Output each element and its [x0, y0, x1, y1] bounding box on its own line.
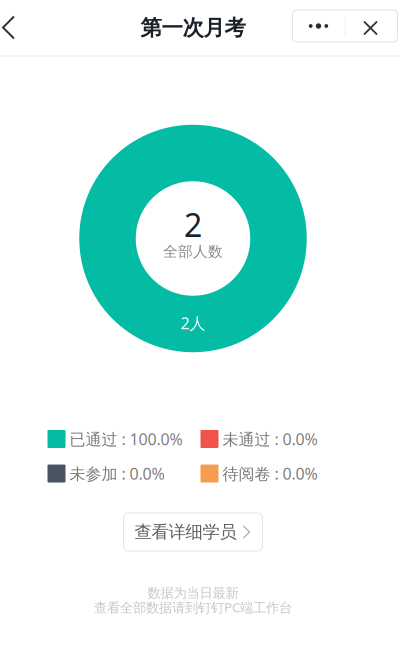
staticText: 查看全部数据请到钉钉PC端工作台 [94, 598, 292, 616]
staticText: 2 [184, 203, 202, 246]
button[interactable]: More [292, 10, 344, 42]
staticText: 待阅卷 : 0.0% [222, 463, 317, 484]
staticText: 未参加 : 0.0% [69, 463, 164, 484]
staticText: 已通过 : 100.0% [69, 428, 182, 450]
staticText: 查看详细学员 [134, 521, 236, 543]
staticText: 全部人数 [163, 242, 223, 260]
staticText: 未通过 : 0.0% [222, 428, 317, 450]
staticText: 2人 [180, 312, 205, 334]
staticText: 数据为当日最新 [147, 585, 238, 601]
staticText: 第一次月考 [140, 15, 245, 41]
button[interactable]: 查看详细学员 [123, 513, 262, 551]
button[interactable]: Close [345, 10, 397, 42]
button[interactable]: Back [0, 11, 36, 55]
